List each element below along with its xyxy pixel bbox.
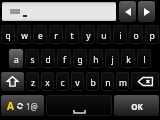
button[interactable]: y — [81, 25, 95, 44]
button[interactable]: OK — [114, 95, 159, 116]
button[interactable]: Previous — [119, 1, 136, 22]
staticText: OK — [131, 101, 143, 112]
staticText: g — [77, 54, 83, 66]
staticText: p — [149, 30, 155, 42]
staticText: h — [93, 54, 99, 66]
staticText: f — [63, 54, 66, 66]
staticText: q — [5, 30, 11, 42]
button[interactable]: c — [56, 72, 69, 91]
button[interactable]: b — [86, 72, 99, 91]
staticText: x — [45, 77, 50, 89]
staticText: A — [7, 99, 14, 113]
staticText: a — [14, 54, 19, 66]
staticText: y — [86, 30, 91, 42]
button[interactable]: p — [145, 25, 159, 44]
button[interactable]: d — [41, 49, 55, 68]
button[interactable]: v — [71, 72, 84, 91]
staticText: z — [31, 77, 35, 89]
button[interactable]: k — [121, 49, 135, 68]
staticText: c — [60, 77, 65, 89]
button[interactable]: u — [97, 25, 111, 44]
button[interactable]: Change input mode — [1, 95, 44, 116]
button[interactable]: i — [113, 25, 127, 44]
staticText: w — [21, 30, 28, 42]
staticText: k — [126, 54, 131, 66]
staticText: o — [133, 30, 139, 42]
staticText: s — [30, 54, 35, 66]
button[interactable]: o — [129, 25, 143, 44]
button[interactable]: f — [57, 49, 71, 68]
button[interactable]: q — [1, 25, 15, 44]
staticText: d — [45, 54, 51, 66]
button[interactable]: w — [17, 25, 31, 44]
staticText: l — [143, 54, 146, 66]
staticText: t — [70, 30, 74, 42]
button[interactable]: m — [116, 72, 129, 91]
button[interactable]: r — [49, 25, 63, 44]
button[interactable]: Shift — [1, 72, 24, 91]
staticText: j — [111, 54, 114, 66]
button[interactable] — [2, 2, 116, 21]
staticText: m — [119, 77, 127, 89]
button[interactable]: t — [65, 25, 79, 44]
staticText: n — [105, 77, 111, 89]
button[interactable]: Backspace — [131, 72, 159, 91]
staticText: e — [38, 30, 43, 42]
staticText: 1@ — [26, 101, 38, 112]
button[interactable]: g — [73, 49, 87, 68]
staticText: u — [101, 30, 107, 42]
button[interactable]: e — [33, 25, 47, 44]
button[interactable]: s — [25, 49, 39, 68]
button[interactable]: x — [41, 72, 54, 91]
button[interactable]: a — [9, 49, 23, 68]
button[interactable]: j — [105, 49, 119, 68]
staticText: i — [119, 30, 122, 42]
button[interactable]: Next — [138, 1, 155, 22]
button[interactable]: h — [89, 49, 103, 68]
button[interactable]: l — [137, 49, 151, 68]
staticText: b — [90, 77, 96, 89]
staticText: v — [75, 77, 80, 89]
button[interactable]: Space — [46, 95, 112, 116]
staticText: r — [54, 30, 58, 42]
button[interactable]: z — [26, 72, 39, 91]
button[interactable]: n — [101, 72, 114, 91]
